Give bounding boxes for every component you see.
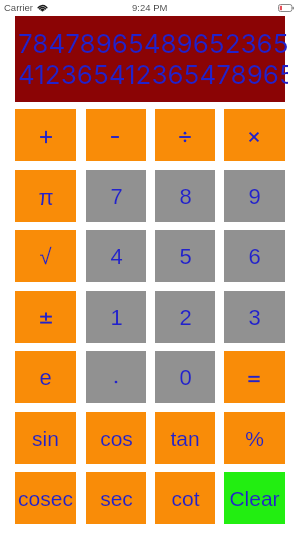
button[interactable]: e xyxy=(15,351,76,403)
button[interactable]: Plus or minus xyxy=(15,291,76,343)
button[interactable]: 0 xyxy=(155,351,215,403)
staticText: cos xyxy=(100,427,133,450)
button[interactable]: cos xyxy=(86,412,146,464)
button[interactable]: 5 xyxy=(155,230,215,282)
staticText: tan xyxy=(170,427,200,450)
button[interactable]: sin xyxy=(15,412,76,464)
staticText: cot xyxy=(171,487,200,510)
staticText: 9 xyxy=(248,184,261,209)
staticText: 7 xyxy=(110,184,123,209)
button[interactable]: Equals xyxy=(224,351,285,403)
button[interactable]: 1 xyxy=(86,291,146,343)
staticText: π xyxy=(38,185,54,210)
staticText: 0 xyxy=(179,365,192,390)
staticText: 78478965489652365 xyxy=(18,28,288,59)
button[interactable]: Plus xyxy=(15,109,76,161)
button[interactable]: Square root xyxy=(15,230,76,282)
button[interactable]: Decimal point xyxy=(86,351,146,403)
button[interactable]: 7 xyxy=(86,170,146,222)
button[interactable]: 8 xyxy=(155,170,215,222)
button[interactable]: Display xyxy=(15,16,285,102)
staticText: 1 xyxy=(110,305,123,330)
button[interactable]: sec xyxy=(86,472,146,524)
button[interactable]: 6 xyxy=(224,230,285,282)
button[interactable]: cot xyxy=(155,472,215,524)
staticText: sec xyxy=(100,487,133,510)
button[interactable]: Divide xyxy=(155,109,215,161)
staticText: 6 xyxy=(248,244,261,269)
staticText: % xyxy=(245,427,264,450)
staticText: 2 xyxy=(179,305,192,330)
button[interactable]: 4 xyxy=(86,230,146,282)
button[interactable]: Percent xyxy=(224,412,285,464)
staticText: 3 xyxy=(248,305,261,330)
button[interactable]: Minus xyxy=(86,109,146,161)
staticText: 9:24 PM xyxy=(132,2,168,13)
button[interactable]: 3 xyxy=(224,291,285,343)
button[interactable]: 2 xyxy=(155,291,215,343)
staticText: √ xyxy=(39,244,52,269)
other: Wi-Fi xyxy=(37,3,48,12)
button[interactable]: Clear xyxy=(224,472,285,524)
staticText: Carrier xyxy=(4,2,34,13)
staticText: e xyxy=(39,365,52,390)
other: Battery xyxy=(278,4,294,12)
staticText: 4 xyxy=(110,244,123,269)
button[interactable]: 9 xyxy=(224,170,285,222)
staticText: 412365412365478965 xyxy=(18,59,288,90)
staticText: Clear xyxy=(229,487,280,510)
button[interactable]: Multiply xyxy=(224,109,285,161)
button[interactable]: cosec xyxy=(15,472,76,524)
button[interactable]: Pi xyxy=(15,170,76,222)
staticText: cosec xyxy=(18,487,73,510)
staticText: sin xyxy=(32,427,59,450)
button[interactable]: tan xyxy=(155,412,215,464)
staticText: 8 xyxy=(179,184,192,209)
staticText: 5 xyxy=(179,244,192,269)
